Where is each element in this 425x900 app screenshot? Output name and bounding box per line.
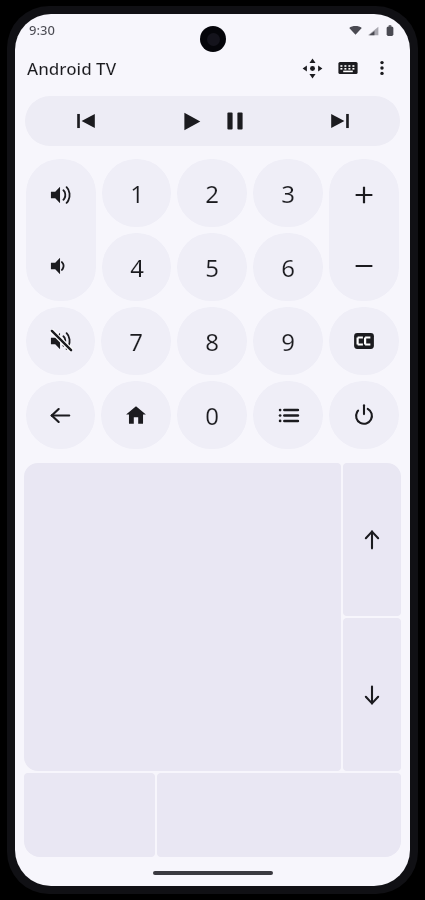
button[interactable]: 4 xyxy=(102,233,171,301)
staticText: 4 xyxy=(130,251,144,284)
button[interactable]: Pause xyxy=(213,99,257,143)
staticText: 7 xyxy=(129,325,143,358)
staticText: 9 xyxy=(281,325,295,358)
button[interactable]: 9 xyxy=(253,307,323,375)
button[interactable]: 3 xyxy=(253,159,323,227)
staticText: 0 xyxy=(205,399,219,432)
button[interactable]: Channel up xyxy=(329,159,399,230)
staticText: Android TV xyxy=(27,57,117,80)
staticText: 8 xyxy=(205,325,219,358)
button[interactable]: Volume up xyxy=(26,159,96,230)
button[interactable]: Power xyxy=(329,381,399,449)
button[interactable]: 7 xyxy=(101,307,171,375)
button[interactable]: Channel down xyxy=(343,618,401,771)
button[interactable]: 0 xyxy=(177,381,247,449)
staticText: 6 xyxy=(281,251,295,284)
button[interactable]: Closed captions xyxy=(329,307,399,375)
button[interactable]: Previous xyxy=(25,96,146,146)
button[interactable]: 8 xyxy=(177,307,247,375)
button[interactable]: Channel up xyxy=(343,463,401,616)
button[interactable]: Back xyxy=(26,381,95,449)
button[interactable]: More options xyxy=(366,52,398,84)
button[interactable]: 6 xyxy=(253,233,323,301)
button[interactable]: Volume down xyxy=(26,230,96,301)
staticText: 1 xyxy=(130,177,144,210)
staticText: 3 xyxy=(281,177,295,210)
staticText: 5 xyxy=(205,251,219,284)
button[interactable]: Mute xyxy=(26,307,95,375)
staticText: 9:30 xyxy=(29,21,55,39)
staticText: 2 xyxy=(205,177,219,210)
button[interactable]: Guide xyxy=(253,381,323,449)
button[interactable]: Home xyxy=(101,381,171,449)
button[interactable]: Keyboard xyxy=(330,50,366,86)
button[interactable]: 5 xyxy=(177,233,247,301)
button[interactable]: Play xyxy=(169,99,213,143)
button[interactable]: Next xyxy=(279,96,400,146)
button[interactable]: Channel down xyxy=(329,230,399,301)
button[interactable]: 2 xyxy=(177,159,247,227)
button[interactable]: D-pad xyxy=(294,50,330,86)
button[interactable]: 1 xyxy=(102,159,171,227)
